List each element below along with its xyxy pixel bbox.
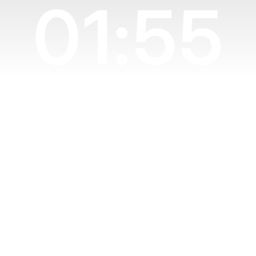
staticText: : [113, 0, 131, 82]
staticText: 5 [133, 0, 177, 82]
staticText: 0 [33, 0, 81, 82]
staticText: 1 [83, 0, 111, 82]
staticText: 5 [179, 0, 223, 82]
